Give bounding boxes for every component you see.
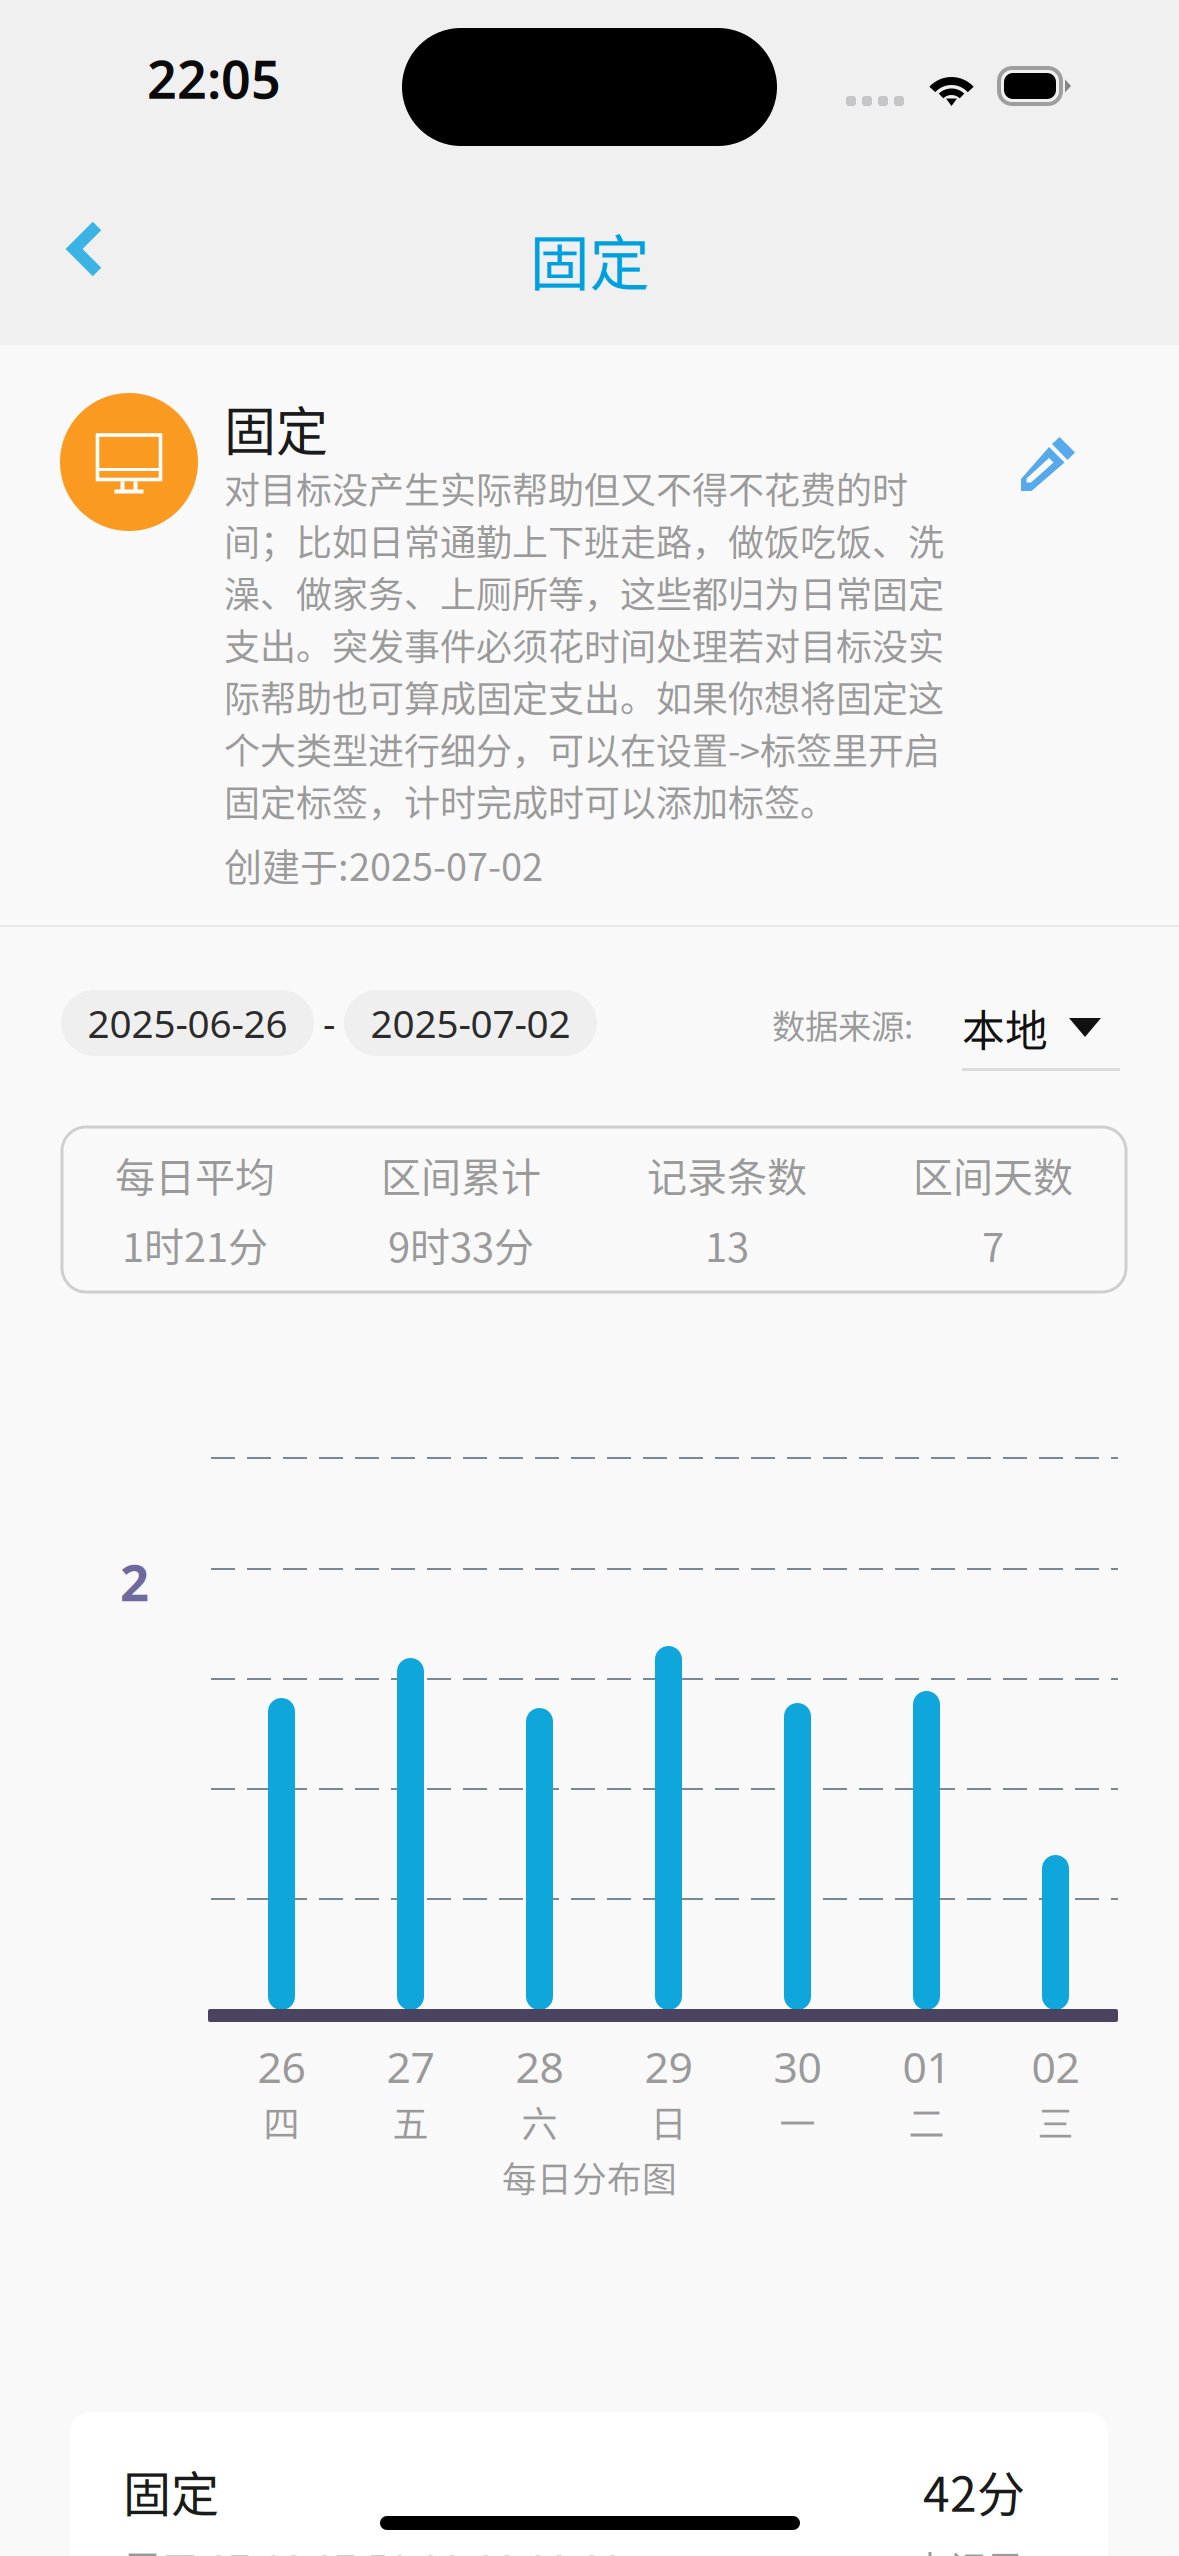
staticText: 对目标没产生实际帮助但又不得不花费的时间；比如日常通勤上下班走路，做饭吃饭、洗澡…: [224, 462, 944, 827]
button[interactable]: 2025-07-02: [344, 990, 597, 1056]
staticText: 四: [263, 2096, 299, 2148]
staticText: 区间累计: [381, 1146, 541, 1203]
staticText: -: [323, 997, 335, 1049]
staticText: 22:05: [147, 44, 281, 113]
button[interactable]: Back: [44, 198, 127, 300]
staticText: 13: [705, 1215, 749, 1273]
staticText: 数据来源:: [772, 1000, 913, 1048]
staticText: 26: [257, 2038, 305, 2095]
staticText: 30: [773, 2038, 821, 2095]
staticText: 29: [644, 2038, 692, 2095]
staticText: 创建于:2025-07-02: [224, 837, 543, 892]
staticText: 周三 07-02 07:51:00-08:33:00: [123, 2539, 623, 2556]
staticText: 27: [386, 2038, 434, 2095]
staticText: 01: [902, 2038, 950, 2095]
staticText: 固定: [123, 2456, 219, 2525]
staticText: 区间天数: [913, 1146, 1073, 1203]
staticText: 五: [392, 2096, 428, 2148]
staticText: 每日平均: [115, 1146, 275, 1203]
button[interactable]: 固定: [70, 2412, 1108, 2556]
staticText: 2025-06-26: [87, 997, 287, 1049]
staticText: 固定: [529, 216, 649, 303]
staticText: 2: [120, 1548, 149, 1615]
staticText: 2025-07-02: [370, 997, 570, 1049]
staticText: 六: [521, 2096, 557, 2148]
staticText: 每日分布图: [502, 2152, 677, 2202]
staticText: 42分: [923, 2456, 1025, 2525]
staticText: 28: [515, 2038, 563, 2095]
button[interactable]: 本地: [962, 988, 1120, 1071]
staticText: 未记录: [911, 2539, 1025, 2556]
staticText: 本地: [962, 997, 1048, 1059]
staticText: 一: [779, 2096, 815, 2148]
staticText: 7: [982, 1215, 1004, 1273]
staticText: 三: [1037, 2096, 1073, 2148]
staticText: 固定: [224, 390, 328, 466]
staticText: 记录条数: [647, 1146, 807, 1203]
staticText: 1时21分: [122, 1215, 268, 1273]
staticText: 02: [1031, 2038, 1079, 2095]
staticText: 9时33分: [388, 1215, 534, 1273]
button[interactable]: Edit: [1021, 437, 1075, 491]
staticText: 二: [908, 2096, 944, 2148]
button[interactable]: 2025-06-26: [61, 990, 314, 1056]
staticText: 日: [650, 2096, 686, 2148]
